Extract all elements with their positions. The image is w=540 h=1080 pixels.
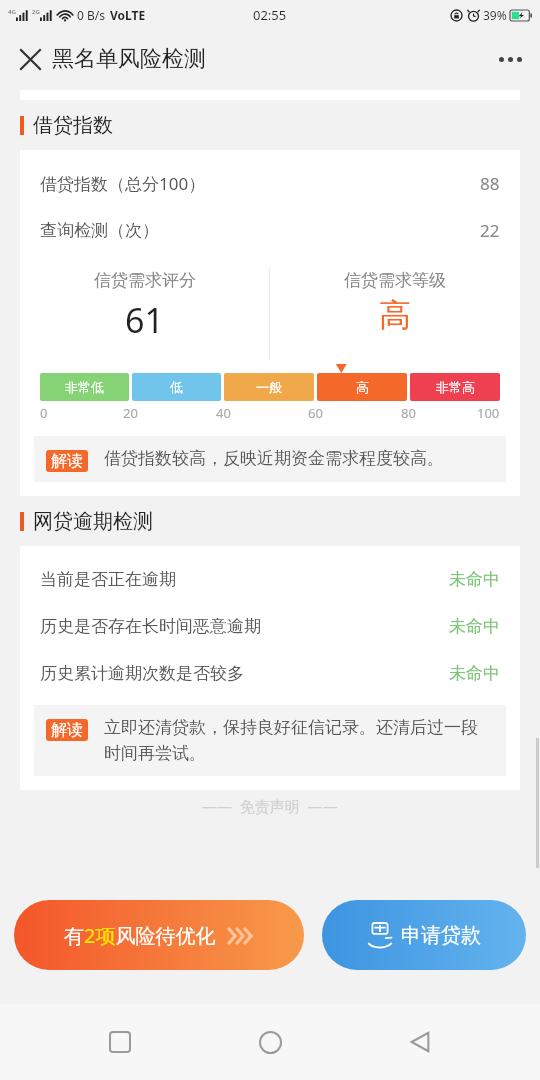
staticText: 高 [379,295,411,335]
button[interactable]: 查询检测（次） [20,207,520,254]
button[interactable]: Close [8,37,52,81]
staticText: 信贷需求评分 [94,270,196,291]
staticText: 40 [216,404,231,422]
staticText: 0 [40,404,48,422]
button[interactable]: 历史累计逾期次数是否较多 [20,650,520,697]
staticText: 历史是否存在长时间恶意逾期 [40,616,261,637]
staticText: 借贷指数 [33,113,113,138]
staticText: 未命中 [449,616,500,637]
staticText: 当前是否正在逾期 [40,569,176,590]
staticText: 有2项风险待优化 [64,922,216,949]
staticText: 22 [480,219,500,242]
staticText: 网贷逾期检测 [33,509,153,534]
staticText: 61 [125,297,164,343]
button[interactable]: 非常高 [410,373,500,401]
staticText: 88 [480,172,500,195]
staticText: 20 [123,404,138,422]
button[interactable]: 高 [317,373,407,401]
staticText: 解读 [51,451,83,471]
button[interactable]: 历史是否存在长时间恶意逾期 [20,603,520,650]
staticText: 查询检测（次） [40,220,159,241]
staticText: VoLTE [110,7,146,23]
button[interactable]: 有2项风险待优化 [14,900,304,970]
button[interactable]: 借贷指数（总分100） [20,160,520,207]
button[interactable]: 当前是否正在逾期 [20,556,520,603]
staticText: 借贷指数（总分100） [40,172,206,195]
staticText: 80 [401,404,416,422]
button[interactable]: 一般 [224,373,314,401]
staticText: 非常低 [65,379,104,395]
staticText: 信贷需求等级 [344,270,446,291]
staticText: 历史累计逾期次数是否较多 [40,663,244,684]
button[interactable]: 申请贷款 [322,900,526,970]
staticText: 60 [308,404,323,422]
staticText: 39% [483,7,507,23]
button[interactable]: More options [486,35,534,83]
staticText: 解读 [51,720,83,740]
staticText: 02:55 [253,6,287,24]
staticText: 0 B/s [77,7,105,23]
staticText: 借贷指数较高，反映近期资金需求程度较高。 [104,448,444,469]
staticText: 低 [170,379,183,395]
button[interactable]: Back [390,1012,450,1072]
staticText: —— 免责声明 —— [202,796,338,816]
staticText: 黑名单风险检测 [52,45,206,73]
button[interactable]: Recent apps [90,1012,150,1072]
staticText: 未命中 [449,663,500,684]
staticText: 高 [356,379,369,395]
staticText: 100 [477,404,500,422]
staticText: 4G [8,8,16,16]
button[interactable]: Home [240,1012,300,1072]
staticText: 一般 [256,379,282,395]
staticText: 非常高 [436,379,475,395]
button[interactable]: 低 [132,373,221,401]
staticText: 申请贷款 [401,923,481,948]
staticText: 2G [32,8,40,16]
staticText: 未命中 [449,569,500,590]
button[interactable]: 非常低 [40,373,129,401]
staticText: 立即还清贷款，保持良好征信记录。还清后过一段时间再尝试。 [104,717,494,764]
